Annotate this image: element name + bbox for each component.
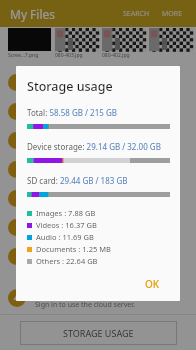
staticText: Scree...7.png: [8, 52, 39, 59]
button[interactable]: [0, 184, 196, 213]
staticText: SEARCH: [123, 9, 150, 19]
button[interactable]: [55, 28, 98, 51]
button[interactable]: [0, 213, 196, 242]
staticText: Others : 22.64 GB: [36, 256, 98, 266]
staticText: Sign in to use the cloud server.: [35, 300, 135, 310]
button[interactable]: [0, 155, 196, 184]
staticText: Total: 58.58 GB / 215 GB: [27, 107, 117, 118]
button[interactable]: OK: [135, 271, 170, 297]
staticText: 080-402.jpg: [102, 52, 130, 59]
staticText: SD card: 29.44 GB / 183 GB: [27, 175, 128, 186]
staticText: Images : 7.88 GB: [36, 208, 96, 218]
staticText: Videos : 16.37 GB: [36, 220, 97, 230]
staticText: Audio : 11.69 GB: [36, 232, 94, 242]
button[interactable]: [102, 28, 145, 51]
button[interactable]: SEARCH: [120, 4, 153, 24]
staticText: STORAGE USAGE: [63, 327, 134, 339]
staticText: OK: [145, 277, 160, 291]
button[interactable]: [0, 242, 196, 271]
button[interactable]: MORE: [159, 4, 186, 24]
staticText: 080-403.jpg: [55, 52, 83, 59]
button[interactable]: [0, 97, 196, 126]
button[interactable]: [0, 68, 196, 97]
staticText: Storage usage: [27, 78, 113, 95]
staticText: Device storage: 29.14 GB / 32.00 GB: [27, 141, 161, 152]
button[interactable]: [0, 126, 196, 155]
button[interactable]: [149, 28, 192, 51]
button[interactable]: Google Drive: [0, 282, 196, 314]
staticText: My Files: [10, 6, 56, 22]
button[interactable]: STORAGE USAGE: [20, 321, 177, 345]
staticText: Documents : 1.25 MB: [36, 244, 111, 254]
staticText: MORE: [162, 9, 183, 19]
